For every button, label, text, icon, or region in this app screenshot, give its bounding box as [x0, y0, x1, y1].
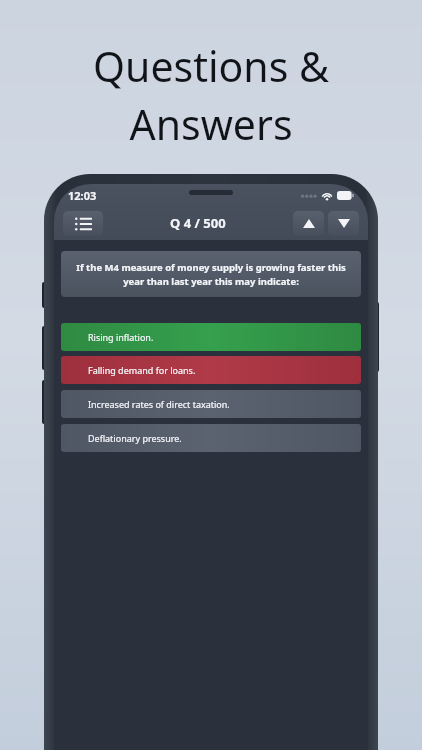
- staticText: Deflationary pressure.: [88, 432, 182, 444]
- staticText: 12:03: [68, 188, 97, 203]
- button[interactable]: Increased rates of direct taxation.: [61, 390, 361, 418]
- staticText: Rising inflation.: [88, 331, 154, 343]
- staticText: Falling demand for loans.: [88, 364, 196, 376]
- staticText: Q 4 / 500: [170, 214, 226, 232]
- button[interactable]: Previous question: [293, 211, 324, 236]
- staticText: Answers: [129, 96, 293, 152]
- button[interactable]: Rising inflation.: [61, 323, 361, 351]
- staticText: Increased rates of direct taxation.: [88, 398, 230, 410]
- staticText: If the M4 measure of money supply is gro…: [70, 261, 352, 288]
- button[interactable]: Falling demand for loans.: [61, 356, 361, 384]
- button[interactable]: Deflationary pressure.: [61, 424, 361, 452]
- button[interactable]: Next question: [328, 211, 359, 236]
- staticText: Questions &: [93, 38, 329, 94]
- button[interactable]: Question list: [63, 211, 103, 236]
